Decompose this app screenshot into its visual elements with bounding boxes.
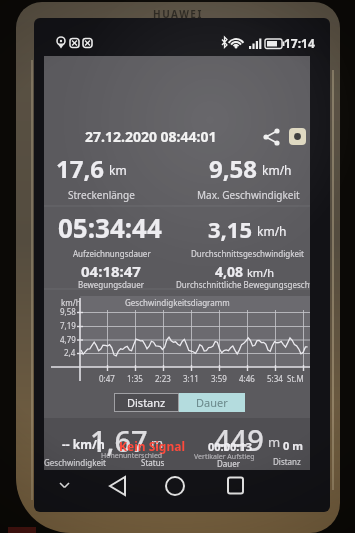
staticText: Bewegungsdauer — [78, 279, 145, 290]
staticText: 5:34 — [267, 373, 283, 384]
staticText: m — [268, 433, 281, 451]
staticText: 17:14 — [284, 35, 315, 51]
staticText: m — [151, 434, 164, 452]
staticText: 0:47 — [99, 373, 115, 384]
staticText: Aufzeichnungsdauer — [73, 248, 151, 259]
staticText: 27.12.2020 08:44:01 — [85, 127, 217, 146]
staticText: 2:23 — [155, 373, 171, 384]
staticText: 4,79 — [60, 334, 76, 345]
button[interactable] — [212, 470, 262, 506]
staticText: 04:18:47 — [81, 261, 141, 281]
staticText: Höhenunterschied — [101, 451, 163, 461]
staticText: 05:34:44 — [58, 210, 162, 245]
staticText: Dauer — [196, 395, 228, 410]
staticText: Durchschnittliche Bewegungsgeschwin... — [176, 279, 310, 290]
staticText: Status — [141, 457, 165, 468]
staticText: 1,67 — [90, 421, 148, 460]
staticText: Streckenlänge — [68, 188, 135, 202]
staticText: Geschwindigkeitsdiagramm — [125, 297, 230, 308]
button[interactable] — [152, 470, 198, 506]
button[interactable] — [288, 127, 308, 147]
staticText: Kein Signal — [119, 438, 185, 454]
staticText: 17,6 — [56, 152, 105, 185]
button[interactable] — [100, 470, 150, 506]
staticText: Distanz — [127, 395, 166, 410]
staticText: 9,58 — [60, 306, 76, 317]
staticText: 00:00:13 — [208, 439, 252, 454]
staticText: 4:46 — [239, 373, 255, 384]
staticText: Geschwindigkeit — [44, 457, 106, 468]
staticText: St.M — [287, 373, 304, 384]
staticText: Durchschnittsgeschwindigkeit — [191, 248, 304, 259]
staticText: Distanz — [273, 456, 301, 467]
staticText: 3:11 — [183, 373, 199, 384]
staticText: -- km/h — [62, 436, 105, 452]
staticText: 2,4 — [64, 347, 76, 358]
staticText: 4,08 — [215, 262, 244, 281]
staticText: km/h — [257, 223, 287, 239]
staticText: 3,15 — [208, 214, 253, 244]
staticText: 7,19 — [60, 320, 76, 331]
staticText: km/h — [262, 162, 292, 178]
button[interactable] — [261, 126, 283, 148]
staticText: 0 m — [283, 438, 303, 453]
staticText: km/h — [247, 265, 275, 280]
staticText: 1:35 — [127, 373, 143, 384]
staticText: HUAWEI — [153, 7, 203, 21]
button[interactable]: Distanz — [115, 394, 178, 411]
staticText: 9,58 — [209, 152, 258, 185]
button[interactable]: Dauer — [179, 393, 245, 412]
staticText: km/h — [61, 297, 81, 308]
staticText: km — [109, 162, 127, 178]
staticText: Max. Geschwindigkeit — [197, 188, 300, 202]
staticText: 3:59 — [211, 373, 227, 384]
staticText: Dauer — [217, 458, 241, 469]
staticText: Vertikaler Aufstieg — [194, 452, 255, 462]
staticText: 449 — [214, 420, 264, 459]
